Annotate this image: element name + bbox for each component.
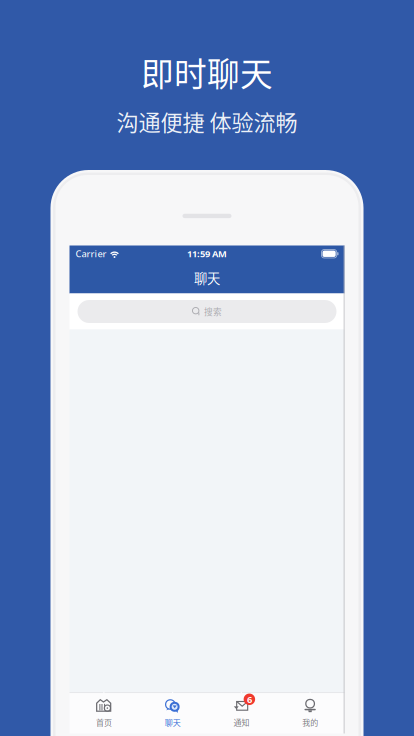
staticText: 聊天 (194, 268, 220, 287)
button[interactable]: 聊天 (138, 693, 207, 733)
staticText: 搜索 (204, 305, 222, 318)
staticText: 聊天 (165, 716, 181, 728)
staticText: 沟通便捷 体验流畅 (116, 105, 297, 137)
staticText: 即时聊天 (141, 48, 273, 96)
button[interactable]: 搜索 (77, 300, 336, 323)
staticText: 我的 (302, 716, 318, 728)
staticText: 11:59 AM (187, 248, 227, 260)
staticText: 6 (247, 693, 252, 705)
staticText: 通知 (233, 716, 249, 728)
button[interactable]: 6 (207, 693, 276, 733)
staticText: Carrier (75, 248, 106, 260)
button[interactable]: 首页 (69, 693, 138, 733)
button[interactable]: 我的 (276, 693, 345, 733)
staticText: 首页 (96, 716, 112, 728)
